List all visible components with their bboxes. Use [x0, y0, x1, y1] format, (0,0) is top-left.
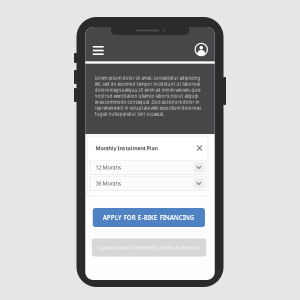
button[interactable]: Close [195, 144, 204, 153]
button[interactable]: LEARN ABOUT MONTHLY INSTALMENTS [92, 238, 206, 256]
button[interactable]: 12 Months [90, 160, 206, 175]
button[interactable]: Open menu [92, 44, 105, 56]
staticText: APPLY FOR E-BIKE FINANCING [103, 213, 195, 222]
staticText: LEARN ABOUT MONTHLY INSTALMENTS [98, 244, 200, 251]
button[interactable]: 36 Months [90, 176, 206, 191]
staticText: Lorem ipsum dolor sit amet, consectetur … [94, 75, 201, 117]
staticText: 12 Months [96, 164, 122, 171]
staticText: Monthly Instalment Plan [95, 144, 157, 152]
button[interactable]: APPLY FOR E-BIKE FINANCING [93, 208, 205, 227]
staticText: 36 Months [96, 180, 122, 187]
button[interactable]: Account [195, 43, 208, 56]
